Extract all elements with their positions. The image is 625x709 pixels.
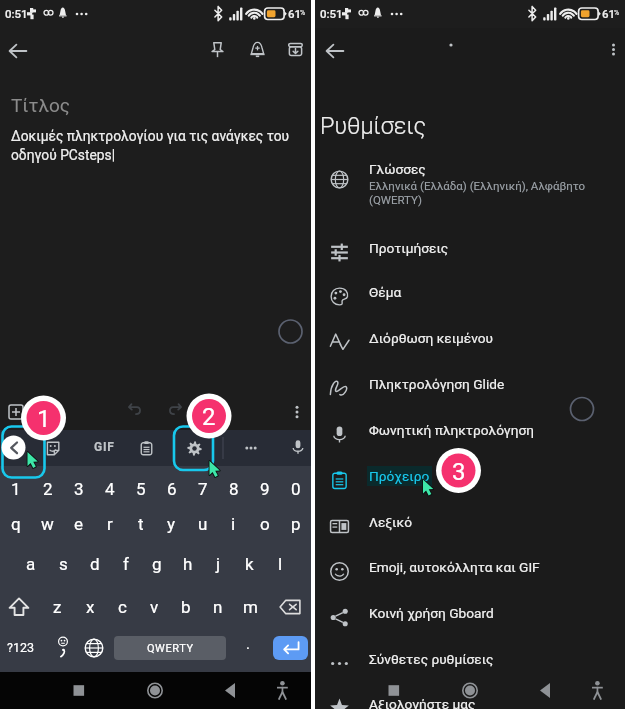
staticText: y (167, 514, 176, 534)
staticText: m (243, 597, 258, 617)
button[interactable]: Reminder (244, 36, 270, 62)
button[interactable]: l (265, 551, 296, 577)
staticText: d (90, 554, 100, 574)
staticText: u (198, 514, 208, 534)
staticText: 61 (602, 7, 616, 20)
button[interactable]: z (41, 592, 74, 622)
button[interactable]: h (172, 551, 203, 577)
staticText: r (107, 514, 113, 534)
staticText: Ρυθμίσεις (320, 112, 426, 140)
button[interactable]: Archive (282, 36, 308, 62)
button[interactable]: More options (600, 36, 625, 62)
button[interactable]: x (74, 592, 106, 622)
button[interactable]: More options (286, 401, 308, 423)
button[interactable]: 9 (249, 476, 280, 502)
button[interactable]: c (106, 592, 138, 622)
button[interactable]: y (156, 511, 187, 537)
button[interactable]: Φωνητική πληκτρολόγηση (315, 417, 625, 451)
button[interactable]: Πληκτρολόγηση Glide (315, 371, 625, 405)
staticText: Πρόχειρο (369, 468, 430, 484)
button[interactable]: Αξιολογήστε μας (315, 691, 625, 709)
staticText: i (231, 514, 236, 534)
staticText: x (86, 597, 95, 617)
button[interactable]: a (15, 551, 47, 577)
button[interactable]: More (241, 438, 261, 458)
staticText: 1 (37, 405, 51, 433)
button[interactable]: Σύνθετες ρυθμίσεις (315, 646, 625, 680)
button[interactable]: Κοινή χρήση Gboard (315, 600, 625, 634)
button[interactable]: 1 (0, 476, 32, 502)
staticText: g (152, 554, 162, 574)
button[interactable]: b (170, 592, 202, 622)
button[interactable]: 7 (187, 476, 218, 502)
button[interactable]: Emoji comma (52, 636, 74, 658)
button[interactable]: Voice input (288, 437, 308, 457)
button[interactable]: Pin (204, 36, 230, 62)
staticText: t (138, 514, 144, 534)
button[interactable]: 2 (32, 476, 63, 502)
button[interactable]: k (234, 551, 265, 577)
staticText: o (260, 514, 270, 534)
button[interactable]: Back (4, 37, 32, 65)
button[interactable]: 6 (156, 476, 187, 502)
button[interactable]: ?123 (7, 640, 34, 655)
staticText: v (150, 597, 159, 617)
button[interactable]: j (203, 551, 234, 577)
button[interactable]: Emoji, αυτοκόλλητα και GIF (315, 554, 625, 588)
button[interactable]: t (125, 511, 156, 537)
button[interactable]: GIF (94, 440, 115, 454)
button[interactable]: . (246, 635, 250, 653)
button[interactable]: g (141, 551, 172, 577)
button[interactable]: Language (84, 638, 104, 658)
button[interactable]: w (32, 511, 63, 537)
button[interactable]: 0 (280, 476, 311, 502)
staticText: a (26, 554, 36, 574)
button[interactable]: Add (5, 401, 27, 423)
button[interactable]: 4 (94, 476, 125, 502)
staticText: 2 (202, 403, 216, 431)
button[interactable]: m (234, 592, 266, 622)
button[interactable]: Back (321, 37, 349, 65)
staticText: Κοινή χρήση Gboard (369, 605, 494, 621)
button[interactable]: s (47, 551, 79, 577)
button[interactable]: q (0, 511, 32, 537)
button[interactable]: Redo (165, 399, 184, 418)
button[interactable]: o (249, 511, 280, 537)
staticText: w (41, 514, 54, 534)
button[interactable]: e (63, 511, 94, 537)
staticText: Δοκιμές πληκτρολογίου για τις ανάγκες το… (11, 128, 293, 164)
button[interactable]: Λεξικό (315, 509, 625, 543)
button[interactable]: Προτιμήσεις (315, 235, 625, 269)
button[interactable]: Γλώσσες (315, 156, 625, 214)
button[interactable]: 3 (63, 476, 94, 502)
button[interactable]: Stickers (42, 438, 62, 458)
staticText: 6 (167, 479, 177, 499)
button[interactable]: v (138, 592, 170, 622)
button[interactable]: p (280, 511, 311, 537)
staticText: QWERTY (147, 642, 194, 655)
button[interactable]: Clipboard (136, 438, 156, 458)
button[interactable]: n (202, 592, 234, 622)
staticText: l (278, 554, 283, 574)
staticText: f (123, 554, 129, 574)
button[interactable]: QWERTY (114, 636, 226, 660)
button[interactable]: r (94, 511, 125, 537)
button[interactable]: Διόρθωση κειμένου (315, 325, 625, 359)
button[interactable]: Backspace (275, 592, 305, 622)
button[interactable]: 5 (125, 476, 156, 502)
button[interactable]: Settings (184, 438, 204, 458)
staticText: z (53, 597, 62, 617)
button[interactable]: Undo (125, 399, 144, 418)
button[interactable]: i (218, 511, 249, 537)
staticText: 3 (74, 479, 84, 499)
button[interactable]: d (79, 551, 110, 577)
button[interactable]: Close toolbar (2, 436, 28, 462)
button[interactable]: Shift (4, 592, 34, 622)
button[interactable]: f (110, 551, 141, 577)
button[interactable]: u (187, 511, 218, 537)
button[interactable]: Πρόχειρο (315, 463, 625, 497)
staticText: e (74, 514, 84, 534)
button[interactable]: Θέμα (315, 279, 625, 313)
button[interactable]: 8 (218, 476, 249, 502)
button[interactable]: Enter (273, 636, 308, 660)
